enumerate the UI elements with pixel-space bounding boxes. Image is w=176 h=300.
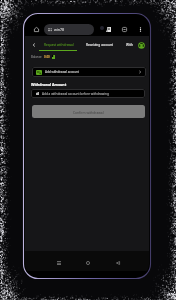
button[interactable]: Tabs <box>121 26 127 32</box>
button[interactable]: Back <box>31 42 37 48</box>
staticText: Request withdrawal <box>44 43 74 47</box>
staticText: With <box>126 43 133 47</box>
staticText: Withdrawal Amount <box>31 82 67 87</box>
staticText: win78 <box>54 27 65 32</box>
button[interactable]: Back <box>115 260 121 266</box>
staticText: Confirm withdrawal <box>73 110 104 114</box>
button[interactable]: Add withdrawal account <box>32 67 146 77</box>
button[interactable]: Downloads <box>105 26 111 32</box>
button[interactable]: Home <box>33 26 40 33</box>
button[interactable]: Recent apps <box>56 260 62 266</box>
staticText: Balance <box>31 55 42 59</box>
staticText: Add a withdrawal account before withdraw… <box>42 92 109 96</box>
button[interactable]: Home <box>85 260 91 266</box>
button[interactable]: Request withdrawal <box>42 41 76 49</box>
button[interactable]: More options <box>137 26 143 32</box>
button[interactable]: Add a withdrawal account before withdraw… <box>31 89 145 98</box>
button[interactable]: Receiving account <box>84 41 115 49</box>
button[interactable]: With <box>124 41 135 49</box>
button[interactable]: Confirm withdrawal <box>32 105 145 118</box>
staticText: Receiving account <box>86 43 113 47</box>
staticText: Add withdrawal account <box>45 70 79 74</box>
button[interactable]: win78 <box>44 24 94 35</box>
button[interactable]: Customer support <box>137 41 145 49</box>
button[interactable]: Page info <box>99 25 105 31</box>
staticText: 0.00 <box>44 55 50 59</box>
